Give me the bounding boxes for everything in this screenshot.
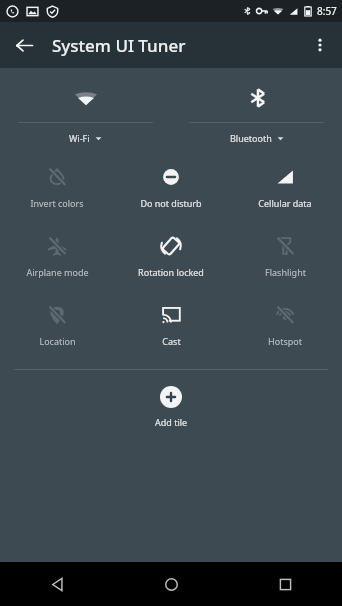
button[interactable]: Rotation locked [114,235,228,278]
staticText: Location [39,335,76,347]
button[interactable]: Back [6,27,42,63]
button[interactable]: Airplane mode [0,235,114,278]
button[interactable]: Recents [228,562,342,606]
button[interactable]: Wi-Fi [0,86,171,144]
button[interactable]: Home [114,562,228,606]
button[interactable]: Location [0,304,114,347]
button[interactable]: Back [0,562,114,606]
staticText: Rotation locked [138,266,204,278]
staticText: Wi-Fi [69,132,90,144]
staticText: Cellular data [258,197,312,209]
button[interactable]: Cast [114,304,228,347]
button[interactable]: Invert colors [0,166,114,209]
staticText: Flashlight [265,266,306,278]
staticText: Airplane mode [26,266,89,278]
button[interactable]: Cellular data [228,166,342,209]
button[interactable]: Do not disturb [114,166,228,209]
staticText: Cast [162,335,181,347]
staticText: Invert colors [30,197,84,209]
staticText: Bluetooth [230,132,272,144]
button[interactable]: Flashlight [228,235,342,278]
button[interactable]: Add tile [0,386,342,428]
staticText: Do not disturb [140,197,202,209]
staticText: Add tile [155,416,188,428]
button[interactable]: Hotspot [228,304,342,347]
staticText: Hotspot [268,335,302,347]
button[interactable]: More options [302,27,338,63]
staticText: 8:57 [317,4,337,18]
staticText: System UI Tuner [52,34,186,57]
button[interactable]: Bluetooth [171,86,342,144]
